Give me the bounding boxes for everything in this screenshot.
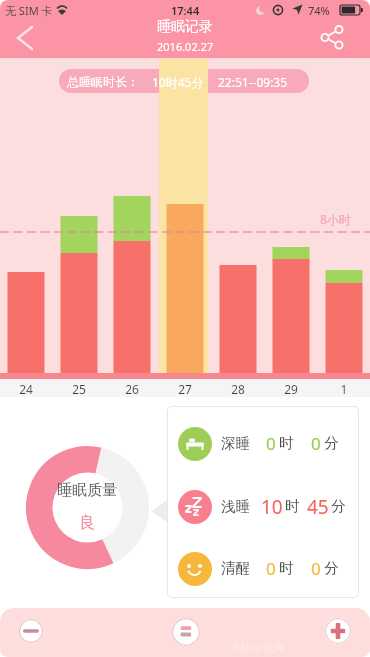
staticText: 睡眠记录 bbox=[157, 18, 213, 36]
staticText: 8小时 bbox=[320, 211, 351, 227]
staticText: 无 SIM 卡 bbox=[5, 3, 53, 18]
staticText: 分 bbox=[324, 559, 339, 577]
staticText: 0 bbox=[266, 432, 276, 455]
staticText: 17:44 bbox=[171, 3, 200, 18]
staticText: 10 bbox=[261, 494, 283, 520]
staticText: 74% bbox=[308, 3, 330, 18]
staticText: 时 bbox=[279, 559, 294, 577]
staticText: 不错生活网 bbox=[230, 641, 285, 655]
staticText: 27 bbox=[173, 381, 197, 397]
staticText: 深睡 bbox=[221, 434, 250, 452]
button[interactable] bbox=[19, 619, 43, 643]
staticText: 时 bbox=[279, 434, 294, 452]
staticText: 清醒 bbox=[221, 559, 250, 577]
staticText: 26 bbox=[120, 381, 144, 397]
button[interactable] bbox=[172, 618, 200, 646]
staticText: 分 bbox=[331, 497, 346, 515]
staticText: 总睡眠时长： bbox=[67, 74, 139, 89]
staticText: 28 bbox=[226, 381, 250, 397]
staticText: 浅睡 bbox=[221, 497, 250, 515]
staticText: 0 bbox=[266, 557, 276, 580]
staticText: 0 bbox=[311, 557, 321, 580]
staticText: 1 bbox=[332, 381, 356, 397]
staticText: 22:51--09:35 bbox=[218, 74, 288, 90]
staticText: 2016.02.27 bbox=[157, 39, 214, 54]
button[interactable] bbox=[325, 618, 351, 644]
button[interactable] bbox=[8, 22, 40, 54]
staticText: 29 bbox=[279, 381, 303, 397]
staticText: 时 bbox=[285, 497, 300, 515]
staticText: 良 bbox=[79, 513, 95, 533]
staticText: 24 bbox=[14, 381, 38, 397]
staticText: 0 bbox=[311, 432, 321, 455]
staticText: 10时45分 bbox=[152, 74, 204, 90]
staticText: 45 bbox=[307, 494, 329, 520]
staticText: 25 bbox=[67, 381, 91, 397]
staticText: 分 bbox=[324, 434, 339, 452]
button[interactable] bbox=[318, 24, 346, 52]
staticText: 睡眠质量 bbox=[57, 481, 117, 500]
